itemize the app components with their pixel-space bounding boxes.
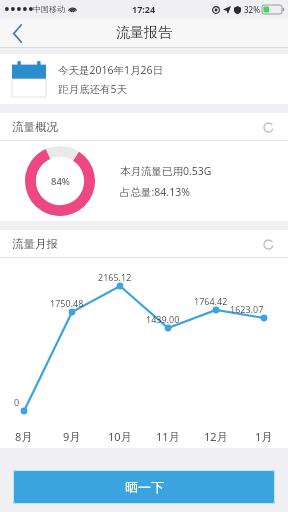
staticText: 11月 — [156, 429, 180, 444]
staticText: 0 — [14, 396, 20, 408]
staticText: 1月 — [255, 429, 273, 444]
staticText: 1750.48 — [50, 297, 84, 309]
staticText: 2165.12 — [98, 271, 132, 283]
button[interactable]: 晒一下 — [13, 470, 275, 504]
button[interactable]: 今天是2016年1月26日 — [0, 54, 288, 104]
staticText: 17:24 — [132, 3, 156, 15]
button[interactable]: Refresh — [258, 234, 278, 254]
staticText: 流量概况 — [12, 120, 58, 134]
button[interactable]: Back — [0, 18, 36, 48]
staticText: 流量月报 — [12, 237, 58, 251]
staticText: 中国移动 — [33, 4, 65, 14]
staticText: 1439.00 — [146, 313, 180, 325]
staticText: 32% — [244, 4, 260, 15]
staticText: 今天是2016年1月26日 — [58, 63, 164, 77]
staticText: 本月流量已用0.53G — [120, 164, 212, 178]
staticText: 84% — [51, 175, 70, 188]
staticText: 占总量:84.13% — [120, 185, 190, 199]
staticText: 12月 — [204, 429, 228, 444]
staticText: 晒一下 — [125, 479, 164, 495]
button[interactable]: Refresh — [258, 117, 278, 137]
staticText: 距月底还有5天 — [58, 82, 128, 96]
staticText: 9月 — [63, 429, 81, 444]
staticText: 1623.07 — [230, 303, 264, 315]
staticText: 10月 — [108, 429, 132, 444]
staticText: 8月 — [15, 429, 33, 444]
staticText: 流量报告 — [116, 24, 172, 42]
staticText: 1764.42 — [194, 295, 228, 307]
